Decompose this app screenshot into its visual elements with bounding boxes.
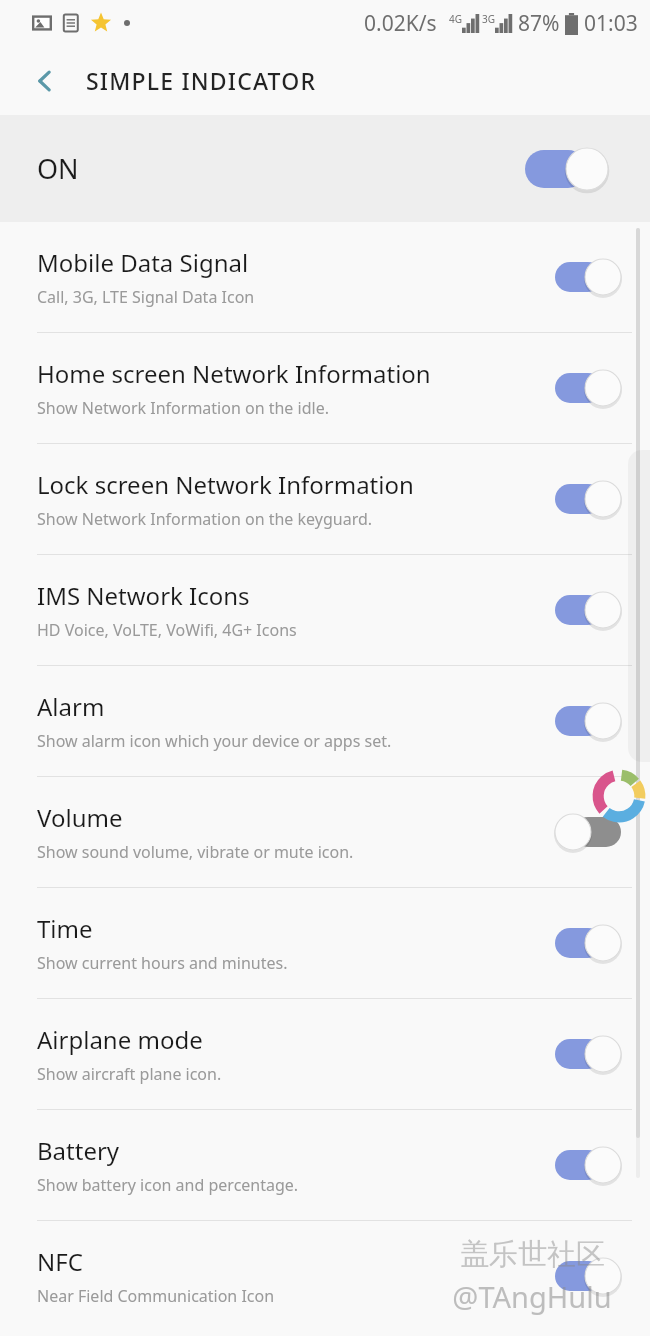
staticText: Show Network Information on the keyguard… (37, 508, 373, 530)
staticText: SIMPLE INDICATOR (86, 65, 317, 96)
button[interactable]: Toggle on (555, 367, 621, 409)
staticText: 01:03 (584, 9, 638, 38)
staticText: Mobile Data Signal (37, 246, 249, 279)
staticText: Show aircraft plane icon. (37, 1063, 222, 1085)
button[interactable]: Toggle on (555, 589, 621, 631)
staticText: Alarm (37, 690, 105, 723)
staticText: Show alarm icon which your device or app… (37, 730, 392, 752)
button[interactable]: Back (22, 58, 68, 104)
staticText: Call, 3G, LTE Signal Data Icon (37, 286, 255, 308)
staticText: Show sound volume, vibrate or mute icon. (37, 841, 354, 863)
button[interactable]: Alarm (0, 666, 650, 776)
button[interactable]: IMS Network Icons (0, 555, 650, 665)
button[interactable]: Toggle on (555, 1255, 621, 1297)
staticText: 4G (449, 12, 462, 26)
button[interactable]: Toggle on (555, 1033, 621, 1075)
button[interactable]: Mobile Data Signal (0, 222, 650, 332)
staticText: 0.02K/s (364, 9, 437, 38)
staticText: 盖乐世社区 (460, 1236, 605, 1273)
staticText: Near Field Communication Icon (37, 1285, 275, 1307)
button[interactable]: Toggle on (525, 145, 608, 193)
button[interactable]: Lock screen Network Information (0, 444, 650, 554)
staticText: ON (37, 150, 79, 187)
staticText: Show current hours and minutes. (37, 952, 288, 974)
button[interactable]: Toggle on (555, 1144, 621, 1186)
button[interactable]: Volume (0, 777, 650, 887)
staticText: 3G (482, 12, 495, 26)
button[interactable]: ON (0, 115, 650, 222)
staticText: @TAngHulu (452, 1277, 612, 1316)
staticText: 87% (518, 9, 560, 38)
staticText: HD Voice, VoLTE, VoWifi, 4G+ Icons (37, 619, 297, 641)
button[interactable]: Battery (0, 1110, 650, 1220)
button[interactable]: Toggle on (555, 922, 621, 964)
staticText: Battery (37, 1134, 120, 1167)
staticText: Time (37, 912, 93, 945)
button[interactable]: Home screen Network Information (0, 333, 650, 443)
button[interactable]: Toggle on (555, 256, 621, 298)
button[interactable]: Toggle on (555, 478, 621, 520)
staticText: Airplane mode (37, 1023, 203, 1056)
staticText: Volume (37, 801, 123, 834)
button[interactable]: NFC (0, 1221, 650, 1331)
staticText: Show battery icon and percentage. (37, 1174, 299, 1196)
button[interactable]: Airplane mode (0, 999, 650, 1109)
button[interactable]: Toggle on (555, 700, 621, 742)
button[interactable]: Time (0, 888, 650, 998)
staticText: NFC (37, 1245, 83, 1278)
staticText: Home screen Network Information (37, 357, 431, 390)
staticText: IMS Network Icons (37, 579, 250, 612)
staticText: Lock screen Network Information (37, 468, 414, 501)
staticText: Show Network Information on the idle. (37, 397, 329, 419)
button[interactable]: Toggle off (555, 811, 621, 853)
